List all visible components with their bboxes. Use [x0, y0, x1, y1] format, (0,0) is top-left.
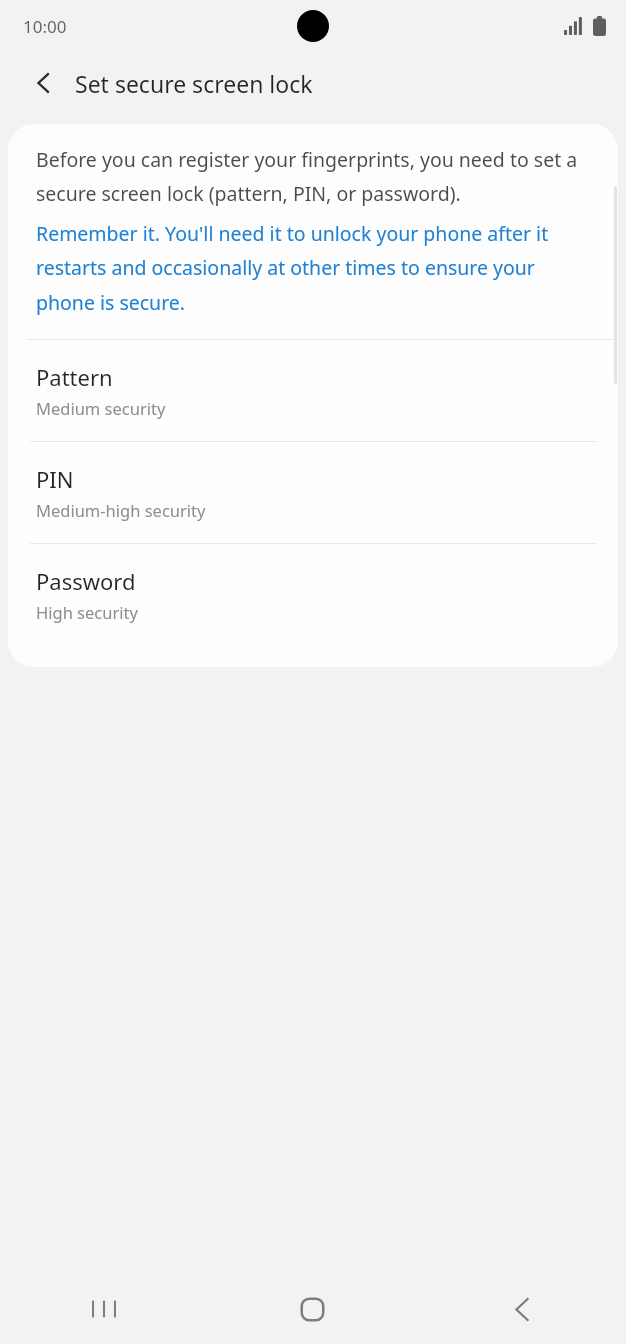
button[interactable]: Home: [208, 1274, 417, 1344]
staticText: 10:00: [23, 15, 67, 38]
button[interactable]: PIN: [8, 442, 618, 543]
button[interactable]: Back: [417, 1274, 626, 1344]
button[interactable]: Recent apps: [0, 1274, 208, 1344]
staticText: Set secure screen lock: [75, 68, 313, 99]
staticText: PIN: [36, 464, 74, 494]
staticText: Remember it. You'll need it to unlock yo…: [36, 220, 590, 316]
staticText: Pattern: [36, 362, 113, 392]
staticText: Medium security: [36, 397, 166, 419]
staticText: Password: [36, 566, 136, 596]
staticText: Before you can register your fingerprint…: [36, 146, 590, 207]
staticText: Medium-high security: [36, 499, 206, 521]
staticText: High security: [36, 601, 138, 623]
button[interactable]: Navigate up: [18, 57, 70, 109]
button[interactable]: Password: [8, 544, 618, 645]
button[interactable]: Pattern: [8, 340, 618, 441]
